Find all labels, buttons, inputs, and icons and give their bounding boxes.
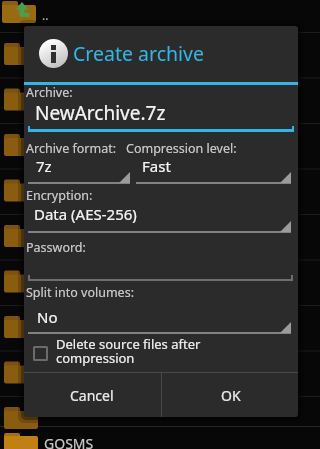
button[interactable]: No — [28, 303, 291, 334]
staticText: Split into volumes: — [26, 284, 134, 301]
button[interactable]: OK — [162, 373, 298, 417]
staticText: Data (AES-256) — [34, 204, 137, 224]
staticText: Create archive — [73, 40, 204, 67]
staticText: Archive format: — [26, 140, 117, 157]
staticText: .. — [42, 7, 49, 23]
button[interactable] — [28, 248, 293, 281]
staticText: 7z — [36, 156, 52, 176]
staticText: Encryption: — [26, 187, 93, 204]
staticText: Compression level: — [126, 140, 237, 157]
staticText: GOSMS — [44, 434, 94, 449]
button[interactable]: NewArchive.7z — [28, 96, 294, 132]
button[interactable]: Fast — [136, 153, 291, 184]
staticText: Archive: — [26, 84, 73, 101]
staticText: Cancel — [70, 386, 114, 405]
button[interactable]: Cancel — [24, 373, 160, 417]
button[interactable]: Data (AES-256) — [28, 202, 291, 233]
staticText: NewArchive.7z — [35, 100, 166, 126]
staticText: No — [37, 307, 58, 327]
staticText: OK — [221, 386, 241, 405]
button[interactable]: Delete source files after compression — [28, 332, 278, 372]
button[interactable]: 7z — [28, 153, 130, 184]
staticText: Fast — [142, 156, 171, 176]
staticText: Delete source files after compression — [56, 335, 201, 367]
staticText: Password: — [26, 239, 86, 256]
